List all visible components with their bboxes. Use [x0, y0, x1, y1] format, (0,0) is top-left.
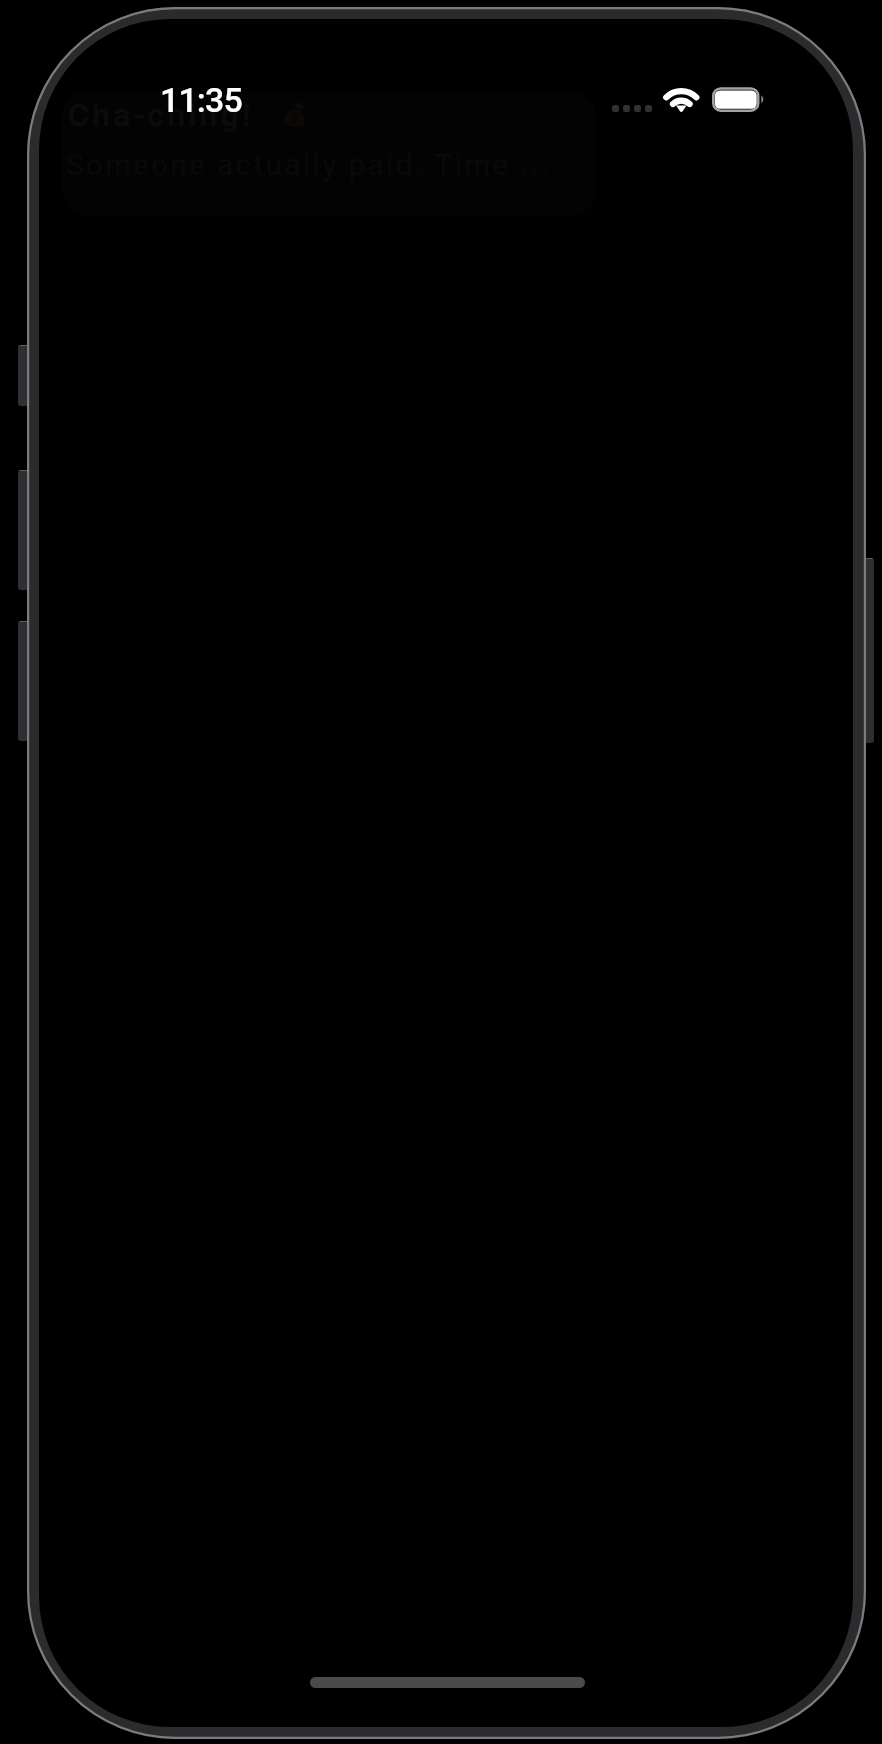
button[interactable]: Home indicator [310, 1677, 585, 1688]
staticText: 11:35 [160, 80, 242, 120]
button[interactable]: Cellular signal [612, 105, 652, 112]
other: Battery full [712, 86, 770, 116]
staticText: Cha-ching! [68, 96, 254, 134]
button[interactable]: Volume up [18, 470, 31, 590]
button[interactable]: Silent switch [18, 345, 31, 406]
staticText: 💰 [281, 102, 309, 128]
other: Wi-Fi [663, 85, 701, 115]
button[interactable]: Side button [861, 558, 874, 743]
button[interactable]: Cha-ching! [62, 91, 596, 216]
button[interactable]: Volume down [18, 621, 31, 741]
